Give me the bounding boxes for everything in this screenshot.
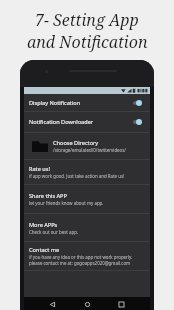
staticText: if app work good. Just take action and R… [29,173,125,179]
staticText: More APPs [29,221,58,229]
button[interactable]: Contact me [24,242,150,270]
button[interactable]: Rate us! [24,160,150,184]
staticText: Check out our best app. [29,229,79,235]
staticText: Choose Directory [53,139,99,147]
staticText: /storage/emulated/0/twittervideos/ [53,147,126,153]
staticText: Display Notification [29,99,81,107]
button[interactable]: Home [81,298,94,310]
staticText: Contact me [29,246,60,254]
button[interactable]: Choose Directory [24,133,150,159]
staticText: Rate us! [29,165,50,173]
button[interactable]: Back [46,298,59,310]
staticText: if you have any idea or this app not wor… [29,254,133,260]
staticText: Notification Downloader [29,118,94,126]
button[interactable]: Share this APP [24,185,150,213]
staticText: and Notification [27,31,148,53]
staticText: 7- Setting App [35,9,139,31]
button[interactable]: More APPs [24,214,150,241]
button[interactable]: Recent apps [115,298,128,310]
staticText: let your friends know about my app. [29,200,104,206]
button[interactable]: Notification Downloader [24,112,150,132]
button[interactable]: Display Notification [24,94,150,111]
staticText: Share this APP [29,192,67,200]
staticText: please contact me at: gogoapps2020@gmail… [29,260,131,266]
